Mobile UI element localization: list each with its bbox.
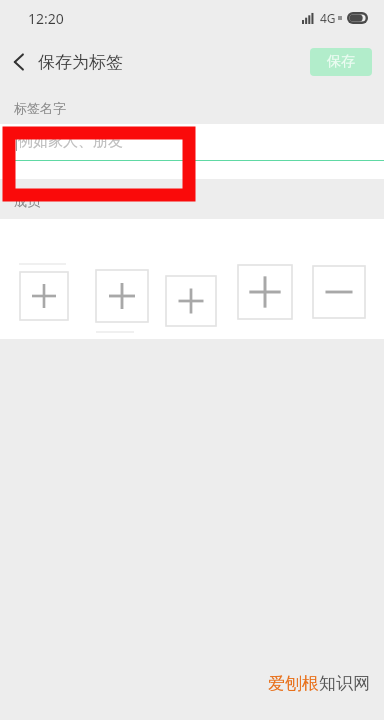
staticText: 知识网: [319, 673, 370, 694]
button[interactable]: Add member 2: [96, 270, 148, 322]
staticText: 保存: [327, 53, 355, 71]
button[interactable]: Add member 4: [238, 265, 292, 319]
staticText: 标签名字: [14, 100, 66, 116]
staticText: 保存为标签: [38, 52, 123, 73]
button[interactable]: Remove member: [313, 266, 365, 318]
staticText: 爱刨根: [268, 673, 319, 694]
button[interactable]: Back: [0, 44, 34, 80]
staticText: 4G: [320, 10, 336, 26]
button[interactable]: Add member 3: [166, 276, 216, 326]
staticText: 例如家人、朋友: [18, 132, 123, 151]
button[interactable]: 例如家人、朋友: [0, 124, 384, 179]
button[interactable]: 保存: [310, 48, 372, 76]
button[interactable]: Add member 1: [20, 272, 68, 320]
staticText: 成员: [14, 193, 40, 209]
staticText: 12:20: [28, 9, 64, 28]
